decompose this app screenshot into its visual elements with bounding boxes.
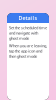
staticText: Details — [18, 14, 37, 22]
staticText: When you are leaving, tap the app icon a… — [9, 43, 47, 59]
staticText: Set the scheduled time and navigate with… — [9, 25, 47, 41]
